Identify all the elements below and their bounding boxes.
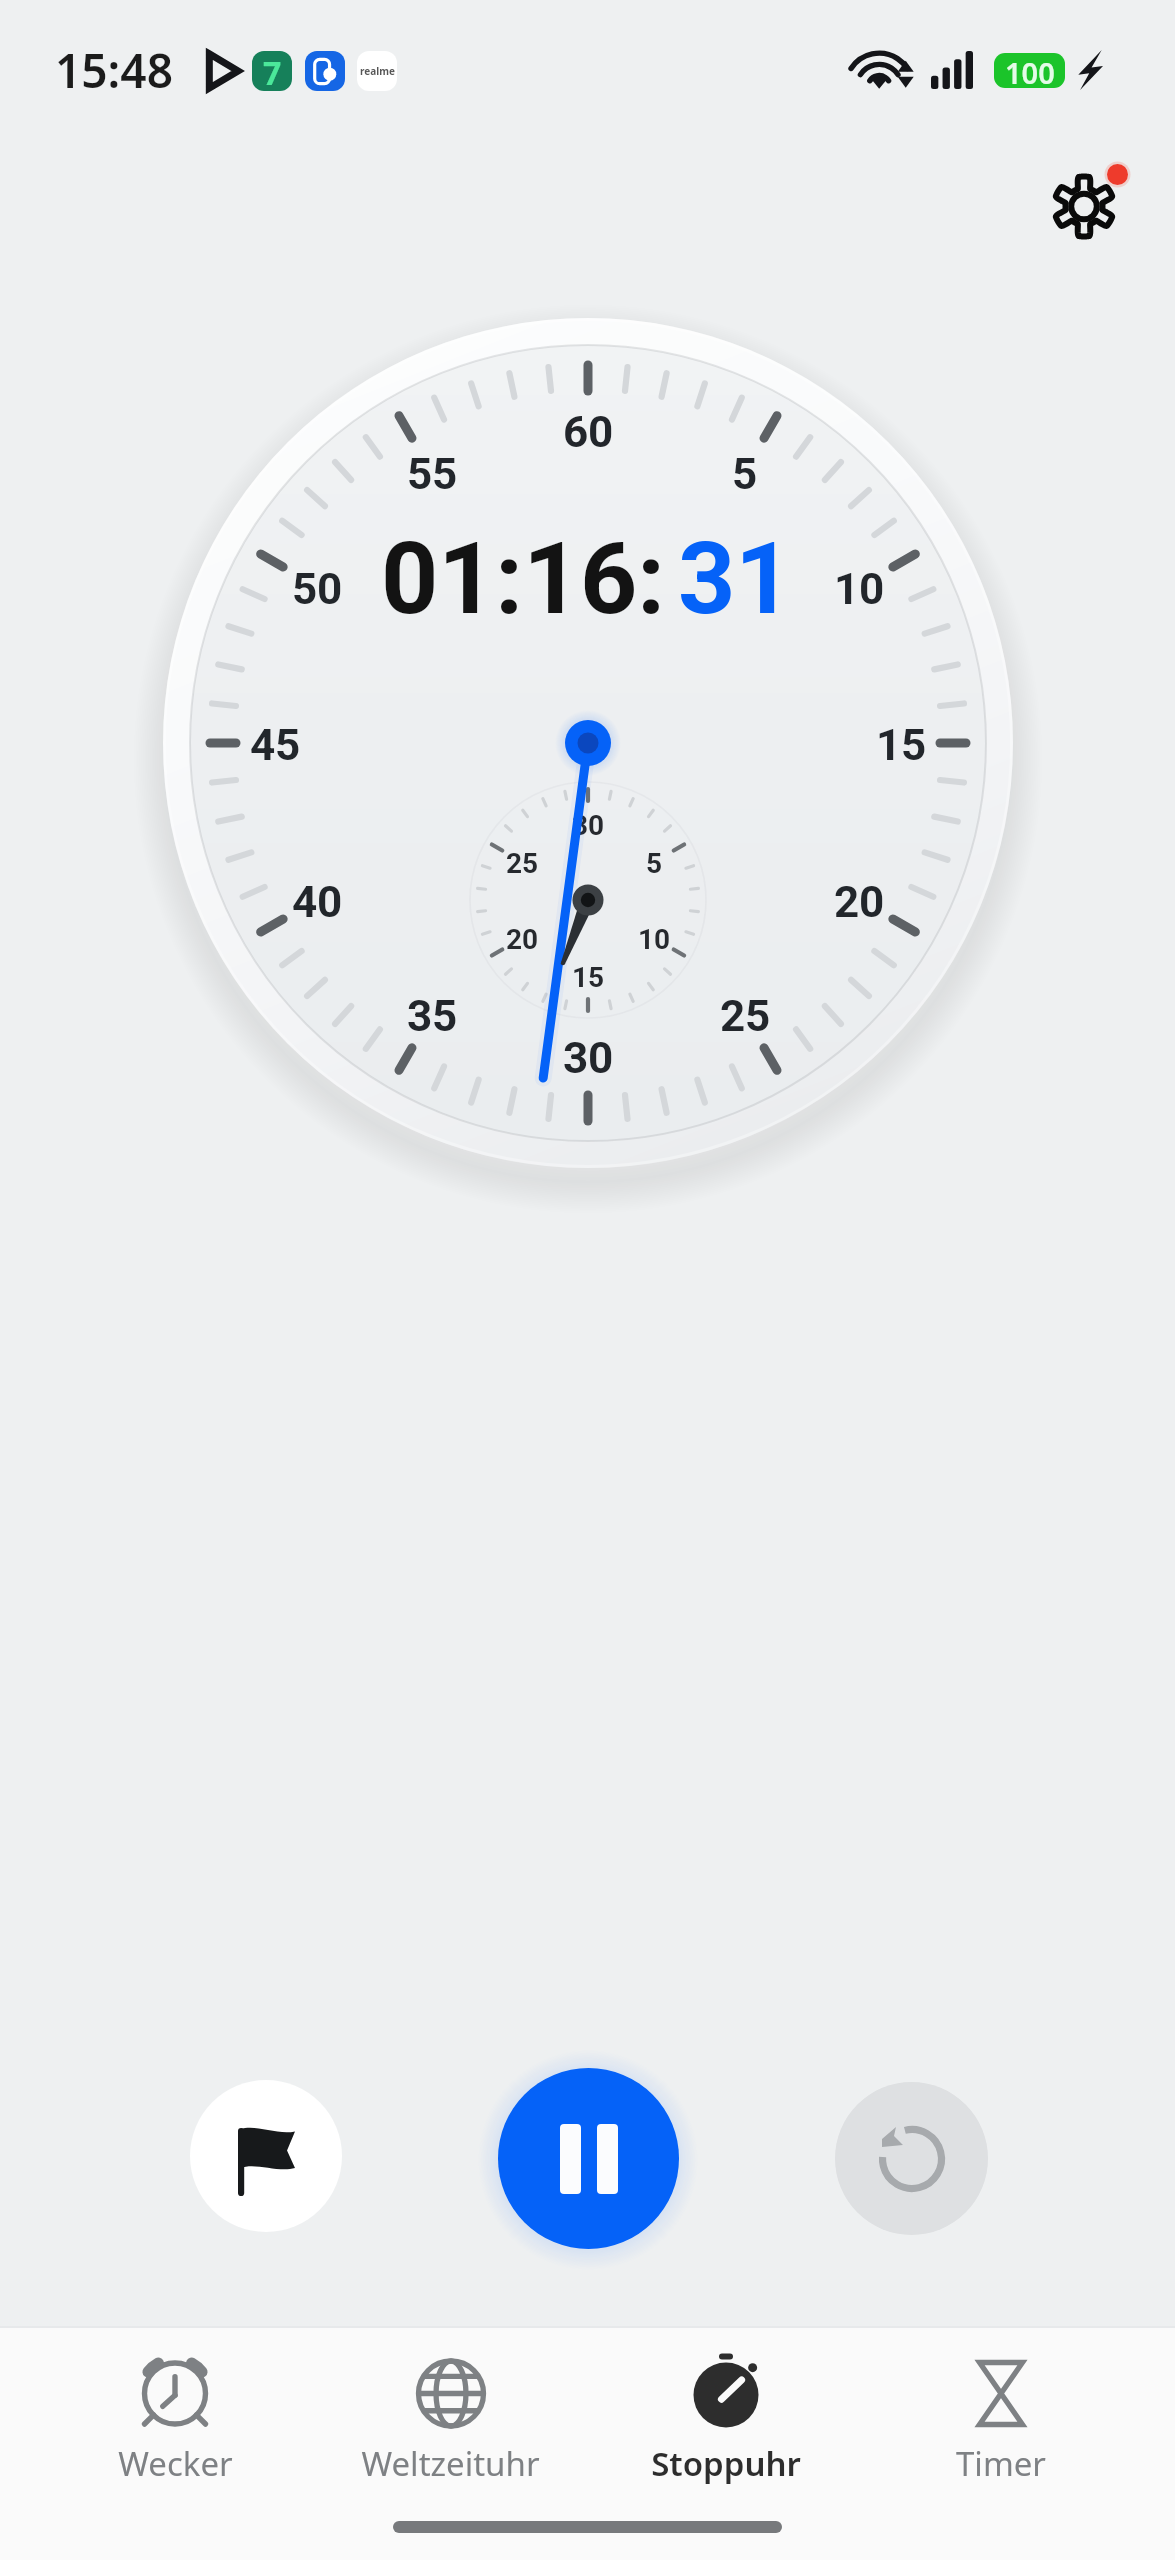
button[interactable]: Timer	[863, 2328, 1138, 2486]
staticText: realme	[360, 64, 395, 78]
button[interactable]: Weltzeituhr	[313, 2328, 588, 2486]
staticText: Weltzeituhr	[361, 2441, 540, 2486]
button[interactable]: Reset	[835, 2082, 988, 2235]
button[interactable]: Stoppuhr	[588, 2328, 863, 2486]
staticText: 15:48	[55, 39, 173, 102]
staticText: 7	[263, 51, 282, 91]
staticText: Stoppuhr	[651, 2441, 801, 2486]
button[interactable]: Lap	[190, 2080, 342, 2232]
staticText: Timer	[956, 2441, 1046, 2486]
staticText: Wecker	[118, 2441, 233, 2486]
button[interactable]: Pause	[498, 2068, 679, 2249]
staticText: 100	[1005, 53, 1055, 88]
button[interactable]: Settings	[1029, 151, 1139, 261]
button[interactable]: Wecker	[37, 2328, 313, 2486]
